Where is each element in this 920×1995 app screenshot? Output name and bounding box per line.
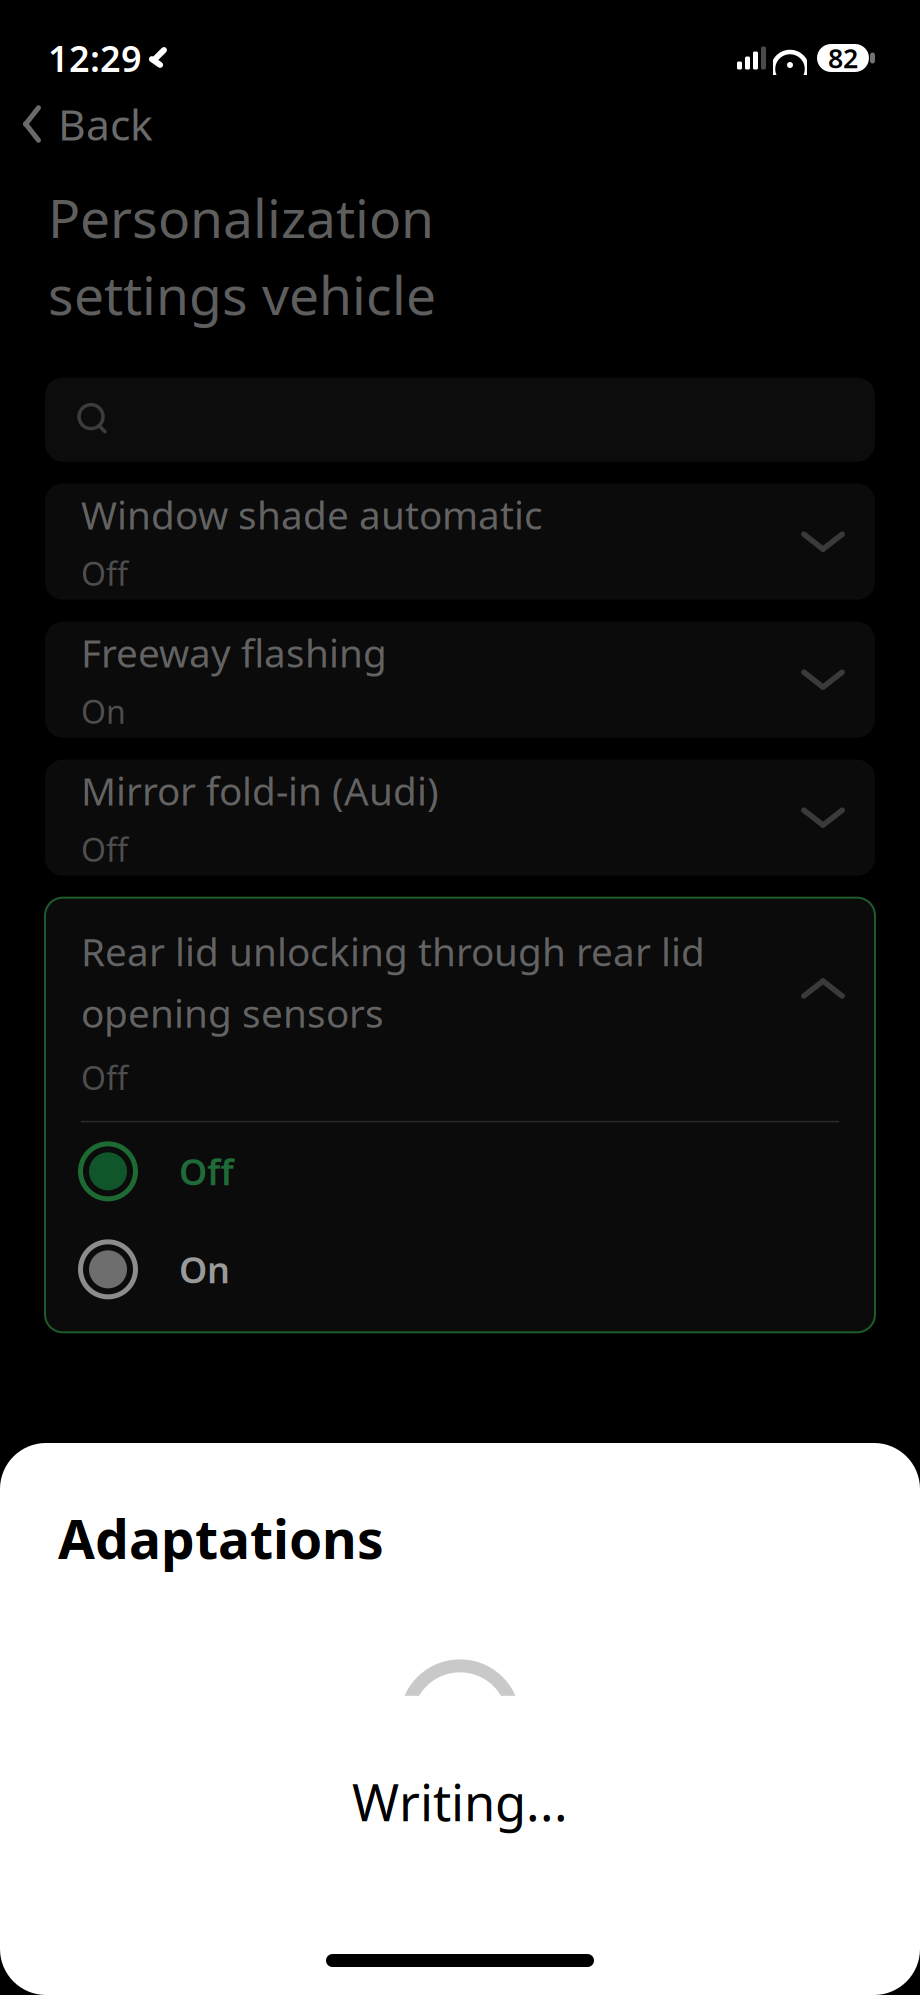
- staticText: Window shade automatic: [81, 489, 543, 540]
- button[interactable]: Off: [45, 1122, 875, 1220]
- button[interactable]: Window shade automatic: [45, 484, 875, 600]
- button[interactable]: Freeway flashing: [45, 622, 875, 738]
- staticText: Back: [58, 96, 153, 152]
- staticText: Freeway flashing: [81, 627, 387, 678]
- staticText: 12:29: [48, 34, 142, 82]
- staticText: settings vehicle: [48, 259, 436, 330]
- button[interactable]: Rear lid unlocking through rear lid: [45, 898, 875, 1121]
- staticText: On: [81, 690, 126, 733]
- staticText: Off: [179, 1147, 234, 1195]
- staticText: Rear lid unlocking through rear lid: [81, 926, 705, 977]
- staticText: Mirror fold-in (Audi): [81, 765, 439, 816]
- staticText: Personalization: [48, 182, 434, 253]
- button[interactable]: Mirror fold-in (Audi): [45, 760, 875, 876]
- staticText: 82: [828, 40, 858, 76]
- button[interactable]: On: [45, 1220, 875, 1318]
- staticText: Off: [81, 552, 128, 595]
- staticText: Off: [81, 828, 128, 871]
- button[interactable]: Back: [0, 88, 920, 160]
- staticText: Writing...: [352, 1768, 568, 1835]
- staticText: opening sensors: [81, 987, 384, 1038]
- staticText: Off: [81, 1056, 128, 1099]
- staticText: On: [179, 1245, 230, 1293]
- staticText: Adaptations: [58, 1503, 384, 1574]
